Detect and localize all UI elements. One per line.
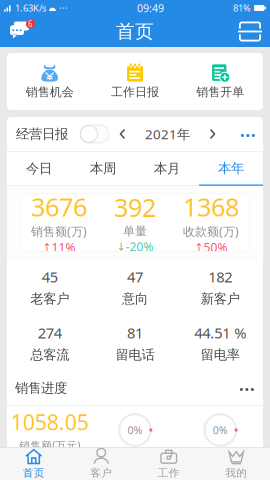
staticText: 老客户 bbox=[30, 291, 69, 307]
staticText: 销售开单 bbox=[196, 85, 244, 99]
staticText: 45 bbox=[42, 267, 58, 287]
staticText: 意向 bbox=[122, 291, 148, 307]
button[interactable]: 本周 bbox=[71, 152, 135, 186]
staticText: 81 bbox=[127, 323, 143, 343]
staticText: 首页 bbox=[23, 466, 45, 479]
staticText: 工作 bbox=[158, 466, 180, 479]
staticText: 今日 bbox=[26, 160, 52, 177]
staticText: 0% bbox=[213, 423, 228, 437]
button[interactable]: 客户 bbox=[67, 448, 135, 480]
staticText: 新客户 bbox=[201, 291, 240, 307]
staticText: 销售进度 bbox=[15, 380, 67, 396]
staticText: 6 bbox=[28, 19, 33, 29]
button[interactable]: 销售机会 bbox=[7, 53, 92, 110]
staticText: 09:49 bbox=[137, 1, 164, 15]
staticText: 11% bbox=[51, 239, 75, 255]
staticText: 182 bbox=[208, 267, 232, 287]
button[interactable]: Scan bbox=[239, 21, 261, 41]
staticText: 收款额(万) bbox=[183, 223, 239, 239]
staticText: 我的 bbox=[225, 466, 247, 479]
staticText: 2021年 bbox=[145, 125, 190, 143]
button[interactable]: Previous year bbox=[117, 127, 128, 140]
staticText: 392 bbox=[114, 190, 156, 224]
staticText: 销售额(万元) bbox=[19, 438, 80, 452]
button[interactable]: 销售开单 bbox=[178, 53, 263, 110]
button[interactable]: 今日 bbox=[7, 152, 71, 186]
staticText: 1368 bbox=[183, 190, 239, 223]
staticText: 0% bbox=[127, 423, 142, 437]
button[interactable]: Messages bbox=[9, 19, 35, 43]
button[interactable]: Next year bbox=[207, 127, 218, 140]
staticText: 经营日报 bbox=[16, 126, 68, 142]
button[interactable]: Daily report toggle bbox=[80, 125, 109, 143]
staticText: 工作日报 bbox=[111, 85, 159, 99]
staticText: 首页 bbox=[116, 20, 154, 43]
staticText: 客户 bbox=[90, 466, 112, 479]
staticText: ↑ bbox=[42, 241, 51, 253]
button[interactable]: More options bbox=[240, 127, 254, 141]
staticText: ↓ bbox=[116, 241, 125, 253]
staticText: 单量 bbox=[123, 224, 147, 239]
button[interactable]: 工作日报 bbox=[92, 53, 178, 110]
staticText: 总客流 bbox=[30, 347, 69, 363]
button[interactable]: 首页 bbox=[0, 448, 67, 480]
staticText: 销售机会 bbox=[26, 85, 74, 99]
staticText: 1058.05 bbox=[11, 408, 89, 436]
staticText: 50% bbox=[203, 239, 227, 255]
button[interactable]: 本年 bbox=[199, 152, 263, 186]
staticText: 留电率 bbox=[201, 347, 240, 363]
button[interactable]: 本月 bbox=[135, 152, 199, 186]
staticText: 44.51 % bbox=[194, 323, 246, 343]
staticText: 3676 bbox=[31, 190, 87, 223]
staticText: ↑ bbox=[194, 241, 203, 253]
staticText: 本月 bbox=[154, 160, 180, 177]
staticText: 本年 bbox=[218, 160, 244, 176]
staticText: ··· bbox=[59, 2, 68, 14]
staticText: 销售额(万) bbox=[31, 223, 87, 239]
staticText: -20% bbox=[125, 239, 153, 255]
button[interactable]: 我的 bbox=[202, 448, 270, 480]
staticText: 47 bbox=[127, 267, 143, 287]
staticText: 本周 bbox=[90, 160, 116, 177]
staticText: 1.63K/s bbox=[15, 2, 46, 14]
staticText: 274 bbox=[38, 323, 62, 343]
button[interactable]: 工作 bbox=[135, 448, 202, 480]
button[interactable]: More bbox=[239, 381, 255, 395]
staticText: 留电话 bbox=[115, 347, 154, 363]
staticText: 81% bbox=[233, 2, 251, 14]
